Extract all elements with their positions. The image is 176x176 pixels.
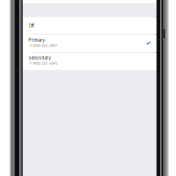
staticText: Primary — [29, 38, 45, 43]
staticText: Off — [29, 23, 35, 28]
button[interactable]: Secondary — [23, 53, 156, 70]
button[interactable]: Primary — [23, 35, 156, 52]
staticText: Secondary — [29, 55, 51, 61]
button[interactable]: Off — [23, 17, 156, 34]
staticText: +1 (408) 555-0942 — [29, 61, 58, 65]
staticText: +1 (408) 555-0941 — [29, 44, 57, 48]
